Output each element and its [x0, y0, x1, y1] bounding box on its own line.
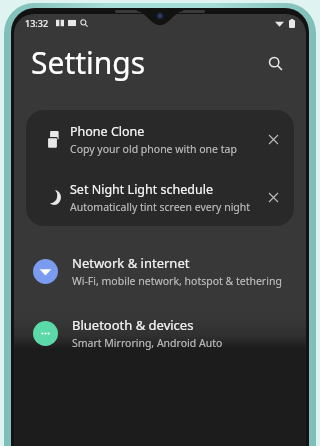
- staticText: Set Night Light schedule: [70, 181, 213, 198]
- button[interactable]: Bluetooth & devices: [14, 310, 306, 356]
- staticText: Automatically tint screen every night: [70, 200, 251, 214]
- staticText: Bluetooth & devices: [72, 316, 194, 334]
- staticText: Smart Mirroring, Android Auto: [72, 336, 223, 350]
- staticText: Network & internet: [72, 254, 190, 272]
- staticText: Copy your old phone with one tap: [70, 142, 237, 156]
- button[interactable]: Set Night Light schedule: [26, 168, 294, 226]
- staticText: Wi-Fi, mobile network, hotspot & tetheri…: [72, 274, 282, 288]
- button[interactable]: Phone Clone: [26, 110, 294, 168]
- staticText: Phone Clone: [70, 123, 145, 140]
- button[interactable]: Network & internet: [14, 248, 306, 294]
- staticText: Settings: [31, 42, 146, 83]
- button[interactable]: Dismiss Phone Clone: [258, 124, 288, 154]
- staticText: 13:32: [25, 17, 49, 29]
- button[interactable]: Search settings: [259, 47, 291, 79]
- button[interactable]: Dismiss Set Night Light schedule: [258, 182, 288, 212]
